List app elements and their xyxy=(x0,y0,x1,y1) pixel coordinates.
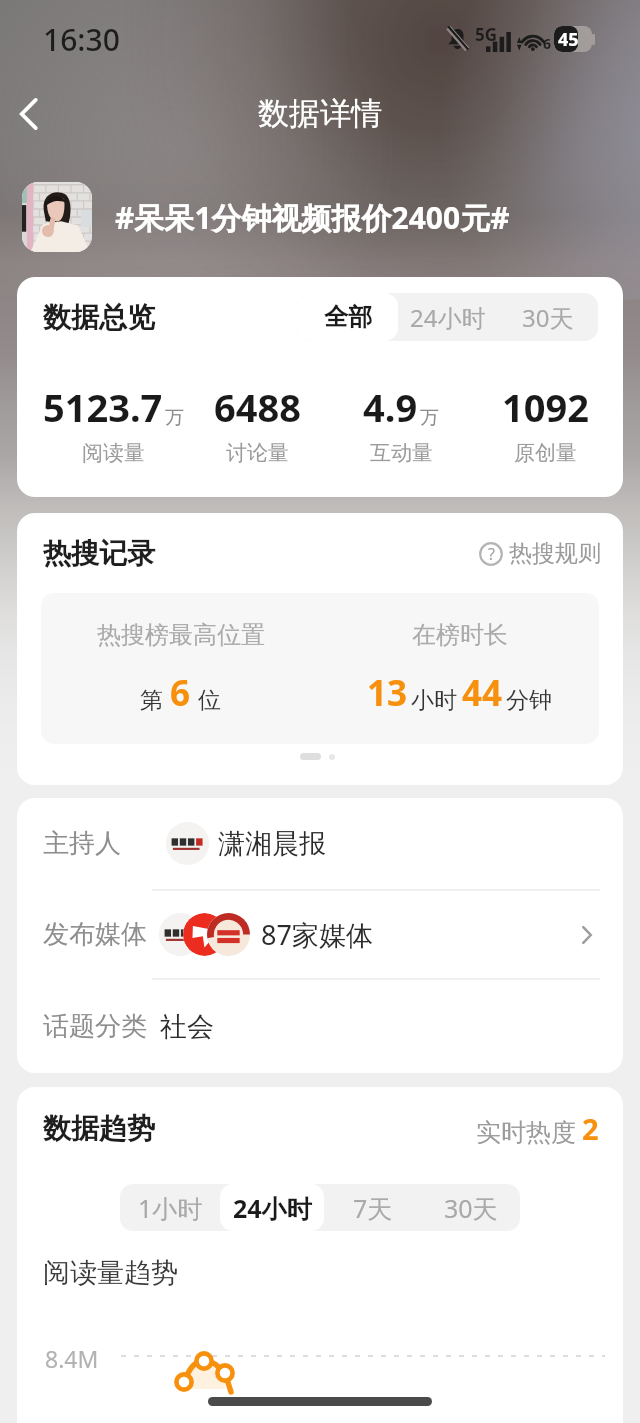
staticText: 6 xyxy=(170,669,191,717)
button[interactable]: 24小时 xyxy=(398,293,498,341)
staticText: 分钟 xyxy=(506,686,552,715)
staticText: 热搜榜最高位置 xyxy=(97,620,265,650)
button[interactable]: 30天 xyxy=(422,1184,520,1231)
staticText: 潇湘晨报 xyxy=(218,827,326,861)
staticText: 讨论量 xyxy=(226,440,289,466)
staticText: 4.9 xyxy=(363,381,418,433)
staticText: 6488 xyxy=(214,381,301,433)
staticText: 16:30 xyxy=(43,19,120,60)
staticText: 87家媒体 xyxy=(261,916,373,953)
staticText: 24小时 xyxy=(233,1191,312,1225)
staticText: 13 xyxy=(367,669,408,717)
button[interactable]: 24小时 xyxy=(220,1184,324,1231)
staticText: 话题分类 xyxy=(43,1010,147,1043)
staticText: 万 xyxy=(165,406,184,430)
button[interactable]: 30天 xyxy=(498,293,598,341)
staticText: 小时 xyxy=(411,686,457,715)
staticText: 8.4M xyxy=(45,1343,99,1374)
button[interactable]: ? xyxy=(479,539,601,568)
staticText: 全部 xyxy=(324,302,372,332)
staticText: 位 xyxy=(198,686,221,715)
button[interactable]: 1小时 xyxy=(120,1184,220,1231)
staticText: 第 xyxy=(140,686,163,715)
staticText: 2 xyxy=(582,1109,599,1148)
staticText: 30天 xyxy=(522,301,574,334)
staticText: 5G xyxy=(475,23,498,46)
staticText: 阅读量 xyxy=(82,440,145,466)
staticText: 社会 xyxy=(160,1010,214,1044)
staticText: 热搜记录 xyxy=(43,536,155,571)
staticText: ? xyxy=(488,543,495,565)
staticText: 7天 xyxy=(353,1191,393,1225)
staticText: 万 xyxy=(420,406,439,430)
button[interactable]: 7天 xyxy=(324,1184,422,1231)
staticText: 主持人 xyxy=(43,827,121,860)
staticText: 1小时 xyxy=(138,1191,203,1225)
staticText: 30天 xyxy=(444,1191,498,1225)
staticText: 数据详情 xyxy=(258,94,382,133)
staticText: 实时热度 xyxy=(476,1117,576,1148)
staticText: 在榜时长 xyxy=(412,620,508,650)
button[interactable]: 全部 xyxy=(297,293,398,341)
staticText: 6 xyxy=(543,34,552,53)
staticText: 阅读量趋势 xyxy=(43,1256,178,1290)
staticText: 数据总览 xyxy=(43,300,155,335)
staticText: 互动量 xyxy=(370,440,433,466)
staticText: 原创量 xyxy=(514,440,577,466)
button[interactable]: 发布媒体 xyxy=(17,891,623,978)
staticText: 热搜规则 xyxy=(509,539,601,568)
staticText: 44 xyxy=(462,669,503,717)
staticText: 5123.7 xyxy=(43,381,163,433)
staticText: 数据趋势 xyxy=(43,1111,155,1146)
staticText: 24小时 xyxy=(410,301,486,334)
staticText: 45 xyxy=(558,27,579,52)
staticText: 1092 xyxy=(502,381,589,433)
button[interactable]: Back xyxy=(0,83,62,145)
staticText: #呆呆1分钟视频报价2400元# xyxy=(115,197,510,238)
staticText: 发布媒体 xyxy=(43,918,147,951)
